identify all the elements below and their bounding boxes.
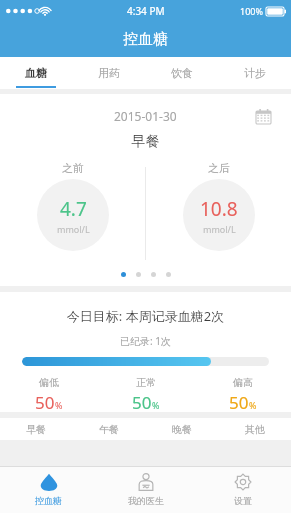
button[interactable]: 用药 [72, 57, 145, 89]
button[interactable]: 偏高 [194, 376, 291, 412]
button[interactable]: 正常 [97, 376, 194, 412]
button[interactable]: 其他 [218, 418, 291, 440]
staticText: mmol/L [203, 223, 236, 235]
staticText: 之后 [208, 161, 230, 175]
staticText: 设置 [234, 495, 252, 506]
staticText: 正常 [136, 376, 156, 389]
staticText: 已纪录: 1次 [0, 334, 291, 348]
staticText: 50 [35, 391, 55, 412]
button[interactable]: 计步 [218, 57, 291, 89]
button[interactable]: 10.8 [183, 179, 255, 251]
button[interactable]: 午餐 [72, 418, 145, 440]
staticText: 计步 [244, 66, 266, 80]
staticText: 100% [240, 5, 263, 17]
staticText: 血糖 [25, 66, 47, 80]
staticText: 10.8 [200, 196, 238, 222]
button[interactable]: 饮食 [145, 57, 218, 89]
staticText: 偏高 [233, 376, 253, 389]
button[interactable]: Calendar [253, 106, 273, 126]
staticText: 4:34 PM [127, 4, 165, 18]
staticText: % [249, 399, 257, 411]
staticText: 2015-01-30 [114, 108, 177, 124]
staticText: 50 [229, 391, 249, 412]
staticText: 我的医生 [128, 495, 164, 506]
staticText: 控血糖 [35, 495, 62, 506]
staticText: % [55, 399, 63, 411]
staticText: 晚餐 [172, 423, 192, 436]
staticText: 午餐 [99, 423, 119, 436]
button[interactable]: 设置 [194, 467, 291, 513]
staticText: 早餐 [26, 423, 46, 436]
button[interactable]: 血糖 [0, 57, 72, 89]
staticText: 4.7 [60, 196, 87, 222]
staticText: 早餐 [0, 133, 291, 151]
button[interactable]: 4.7 [37, 179, 109, 251]
staticText: 其他 [245, 423, 265, 436]
staticText: mmol/L [57, 223, 90, 235]
staticText: 50 [132, 391, 152, 412]
staticText: 之前 [62, 161, 84, 175]
staticText: 用药 [98, 66, 120, 80]
staticText: 控血糖 [123, 30, 168, 49]
staticText: 饮食 [171, 66, 193, 80]
button[interactable]: 早餐 [0, 418, 72, 440]
staticText: % [152, 399, 160, 411]
button[interactable]: 晚餐 [145, 418, 218, 440]
staticText: 今日目标: 本周记录血糖2次 [0, 307, 291, 325]
button[interactable]: 我的医生 [97, 467, 194, 513]
button[interactable]: 控血糖 [0, 467, 97, 513]
staticText: 偏低 [39, 376, 59, 389]
button[interactable]: 偏低 [0, 376, 97, 412]
